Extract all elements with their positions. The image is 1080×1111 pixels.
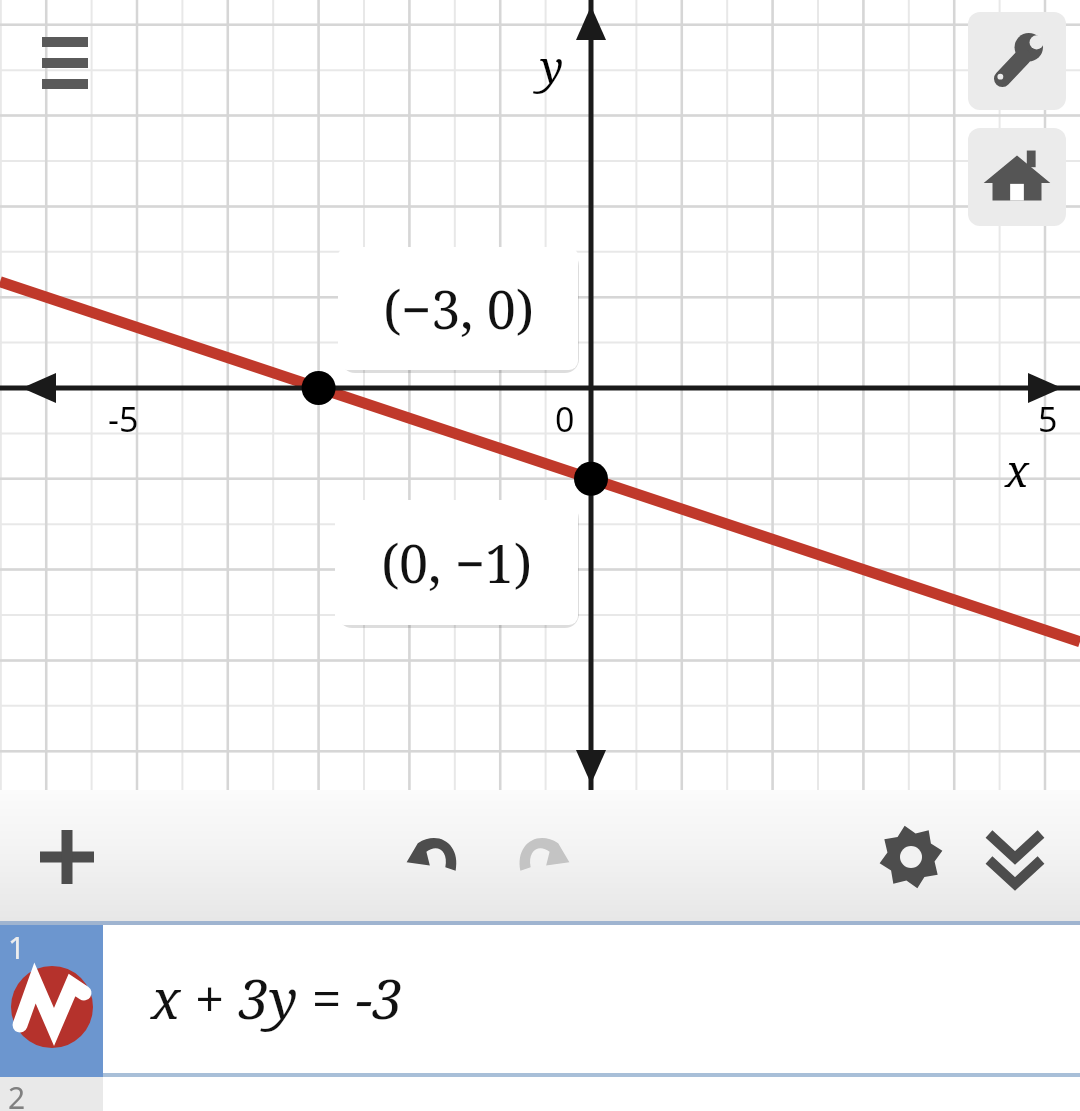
staticText: -5: [108, 396, 139, 442]
button[interactable]: Graph settings: [868, 814, 954, 900]
staticText: 0: [555, 396, 575, 442]
button[interactable]: Home: [968, 128, 1066, 226]
button[interactable]: Undo: [392, 814, 478, 900]
button[interactable]: Redo: [498, 814, 584, 900]
button[interactable]: Menu: [24, 28, 106, 98]
button[interactable]: Settings tools: [968, 12, 1066, 110]
staticText: (0, −1): [381, 527, 532, 598]
button[interactable]: Collapse keypad: [972, 814, 1058, 900]
staticText: (−3, 0): [383, 273, 534, 344]
staticText: x + 3y = −3: [151, 961, 403, 1035]
staticText: y: [540, 36, 564, 96]
button[interactable]: Add expression: [24, 814, 110, 900]
button[interactable]: 2: [0, 1077, 1080, 1111]
staticText: 2: [8, 1077, 26, 1111]
staticText: 1: [8, 927, 26, 968]
staticText: 5: [1038, 396, 1058, 442]
staticText: x: [1005, 440, 1030, 500]
button[interactable]: 1: [0, 925, 1080, 1077]
